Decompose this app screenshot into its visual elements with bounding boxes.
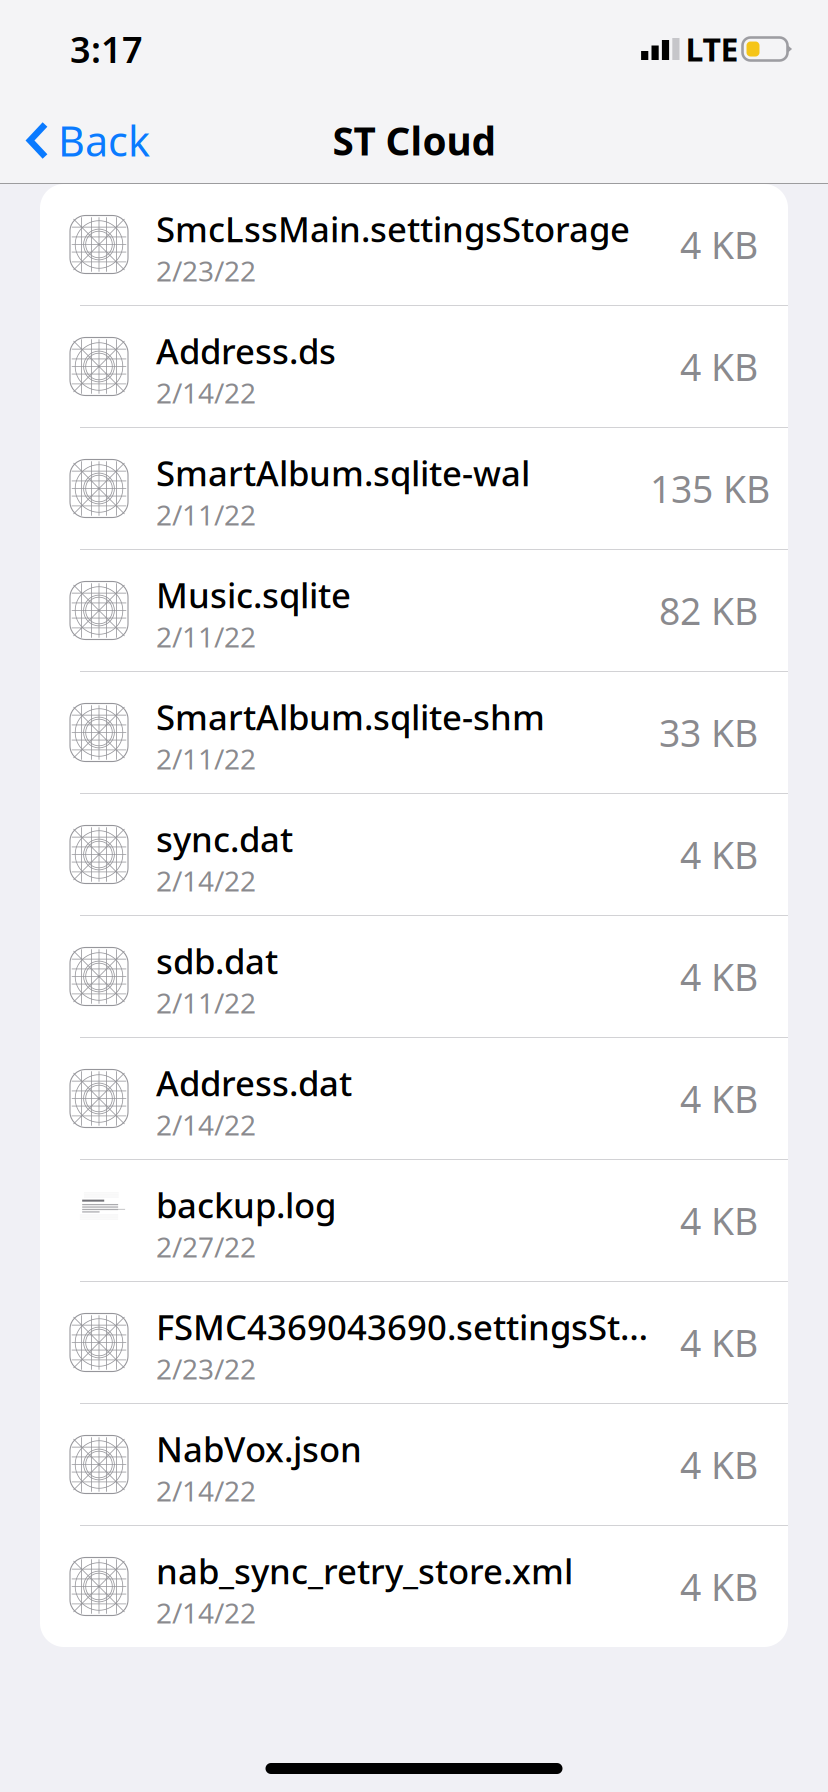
staticText: backup.log xyxy=(156,1182,336,1228)
staticText: Back xyxy=(58,113,150,168)
button[interactable]: sync.dat xyxy=(40,794,788,915)
staticText: SmcLssMain.settingsStorage xyxy=(156,206,630,252)
button[interactable]: Back xyxy=(0,101,150,180)
staticText: 2/23/22 xyxy=(156,1350,256,1387)
staticText: 4 KB xyxy=(680,342,758,391)
staticText: 4 KB xyxy=(680,220,758,269)
button[interactable]: sdb.dat xyxy=(40,916,788,1037)
button[interactable]: Address.dat xyxy=(40,1038,788,1159)
staticText: Address.dat xyxy=(156,1060,352,1106)
staticText: 135 KB xyxy=(650,464,770,513)
staticText: 33 KB xyxy=(659,708,758,757)
button[interactable]: backup.log xyxy=(40,1160,788,1281)
staticText: 2/11/22 xyxy=(156,740,256,777)
staticText: sdb.dat xyxy=(156,938,278,984)
staticText: 2/11/22 xyxy=(156,984,256,1021)
staticText: 2/23/22 xyxy=(156,252,256,289)
staticText: 4 KB xyxy=(680,1440,758,1489)
button[interactable]: nab_sync_retry_store.xml xyxy=(40,1526,788,1647)
button[interactable]: SmartAlbum.sqlite-shm xyxy=(40,672,788,793)
button[interactable]: Address.ds xyxy=(40,306,788,427)
staticText: NabVox.json xyxy=(156,1426,362,1472)
staticText: 2/14/22 xyxy=(156,1594,256,1631)
staticText: 2/14/22 xyxy=(156,1106,256,1143)
staticText: LTE xyxy=(685,28,738,70)
button[interactable]: FSMC4369043690.settingsSt… xyxy=(40,1282,788,1403)
staticText: 4 KB xyxy=(680,1074,758,1123)
staticText: Address.ds xyxy=(156,328,336,374)
button[interactable]: SmcLssMain.settingsStorage xyxy=(40,184,788,305)
button[interactable]: SmartAlbum.sqlite-wal xyxy=(40,428,788,549)
staticText: 2/14/22 xyxy=(156,862,256,899)
button[interactable]: NabVox.json xyxy=(40,1404,788,1525)
staticText: SmartAlbum.sqlite-shm xyxy=(156,694,545,740)
staticText: 2/14/22 xyxy=(156,374,256,411)
staticText: SmartAlbum.sqlite-wal xyxy=(156,450,530,496)
staticText: 2/11/22 xyxy=(156,496,256,533)
staticText: 4 KB xyxy=(680,1196,758,1245)
staticText: nab_sync_retry_store.xml xyxy=(156,1548,573,1594)
staticText: sync.dat xyxy=(156,816,293,862)
staticText: 4 KB xyxy=(680,1562,758,1611)
staticText: 4 KB xyxy=(680,830,758,879)
staticText: 3:17 xyxy=(70,25,143,73)
staticText: 2/27/22 xyxy=(156,1228,256,1265)
staticText: 2/11/22 xyxy=(156,618,256,655)
staticText: 4 KB xyxy=(680,1318,758,1367)
staticText: 2/14/22 xyxy=(156,1472,256,1509)
staticText: 4 KB xyxy=(680,952,758,1001)
button[interactable]: Music.sqlite xyxy=(40,550,788,671)
staticText: Music.sqlite xyxy=(156,572,351,618)
staticText: ST Cloud xyxy=(332,115,495,166)
staticText: 82 KB xyxy=(659,586,758,635)
staticText: FSMC4369043690.settingsSt… xyxy=(156,1304,648,1350)
